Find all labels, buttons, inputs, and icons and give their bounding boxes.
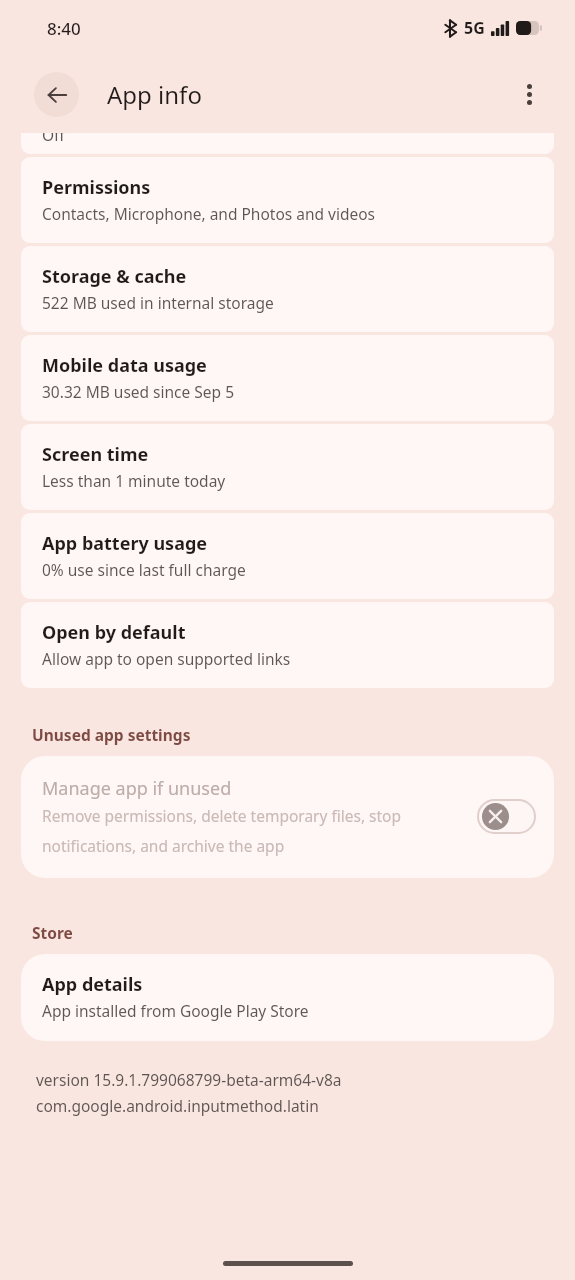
staticText: Storage & cache	[42, 264, 187, 289]
button[interactable]: Open by default	[21, 602, 554, 688]
staticText: 8:40	[47, 17, 81, 40]
staticText: version 15.9.1.799068799-beta-arm64-v8a	[36, 1069, 342, 1090]
button[interactable]: Storage & cache	[21, 246, 554, 332]
staticText: 0% use since last full charge	[42, 559, 246, 580]
staticText: 5G	[464, 17, 485, 39]
staticText: Less than 1 minute today	[42, 470, 226, 491]
staticText: Allow app to open supported links	[42, 648, 291, 669]
staticText: Open by default	[42, 620, 186, 645]
staticText: Mobile data usage	[42, 353, 207, 378]
button[interactable]: Back	[34, 72, 79, 117]
staticText: Screen time	[42, 442, 149, 467]
button[interactable]: App battery usage	[21, 513, 554, 599]
staticText: 30.32 MB used since Sep 5	[42, 381, 235, 402]
staticText: Remove permissions, delete temporary fil…	[42, 805, 468, 856]
staticText: Store	[32, 922, 73, 943]
button[interactable]: Screen time	[21, 424, 554, 510]
staticText: Manage app if unused	[42, 776, 232, 801]
staticText: App details	[42, 972, 143, 997]
staticText: Contacts, Microphone, and Photos and vid…	[42, 203, 376, 224]
button[interactable]: Manage app if unused toggle, off	[478, 800, 535, 833]
staticText: App info	[107, 78, 202, 111]
button[interactable]: Permissions	[21, 157, 554, 243]
button[interactable]: Off	[21, 133, 554, 154]
staticText: com.google.android.inputmethod.latin	[36, 1095, 319, 1116]
staticText: App installed from Google Play Store	[42, 1000, 309, 1021]
staticText: Permissions	[42, 175, 151, 200]
button[interactable]: Manage app if unused	[21, 756, 554, 878]
button[interactable]: App details	[21, 954, 554, 1041]
button[interactable]: Mobile data usage	[21, 335, 554, 421]
staticText: Unused app settings	[32, 724, 191, 745]
staticText: Off	[42, 133, 65, 145]
button[interactable]: More options	[507, 72, 551, 116]
staticText: App battery usage	[42, 531, 208, 556]
staticText: 522 MB used in internal storage	[42, 292, 274, 313]
